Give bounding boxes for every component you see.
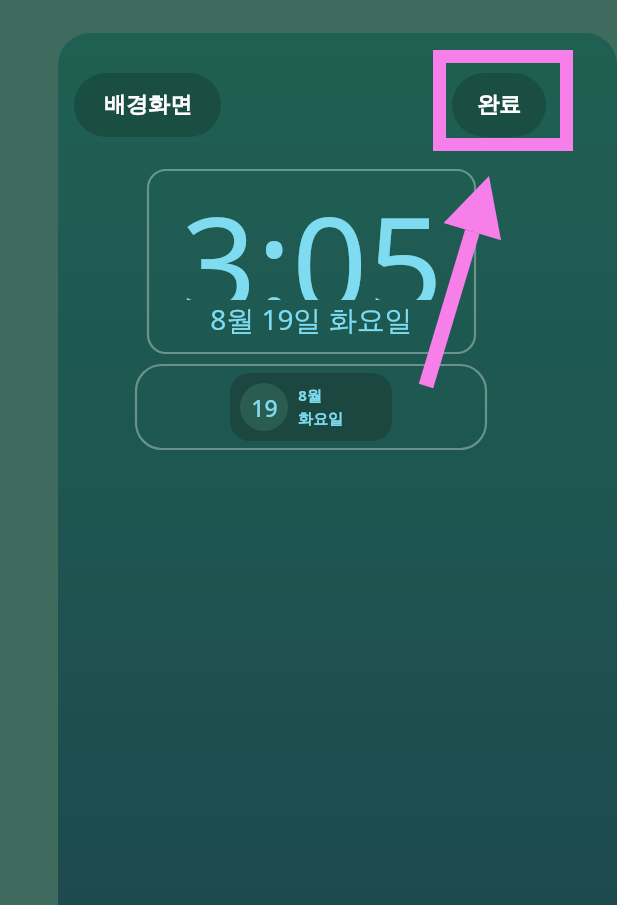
button[interactable]: 3:05 (148, 170, 475, 353)
button[interactable]: 완료 (452, 73, 546, 137)
staticText: 8월 19일 화요일 (210, 300, 413, 338)
button[interactable]: 19 (136, 365, 486, 449)
button[interactable]: 배경화면 (74, 73, 221, 137)
staticText: 8월 (298, 385, 322, 405)
staticText: 3:05 (181, 172, 443, 300)
staticText: 19 (251, 392, 278, 423)
staticText: 화요일 (298, 410, 343, 429)
staticText: 배경화면 (104, 91, 192, 119)
staticText: 완료 (477, 91, 521, 119)
